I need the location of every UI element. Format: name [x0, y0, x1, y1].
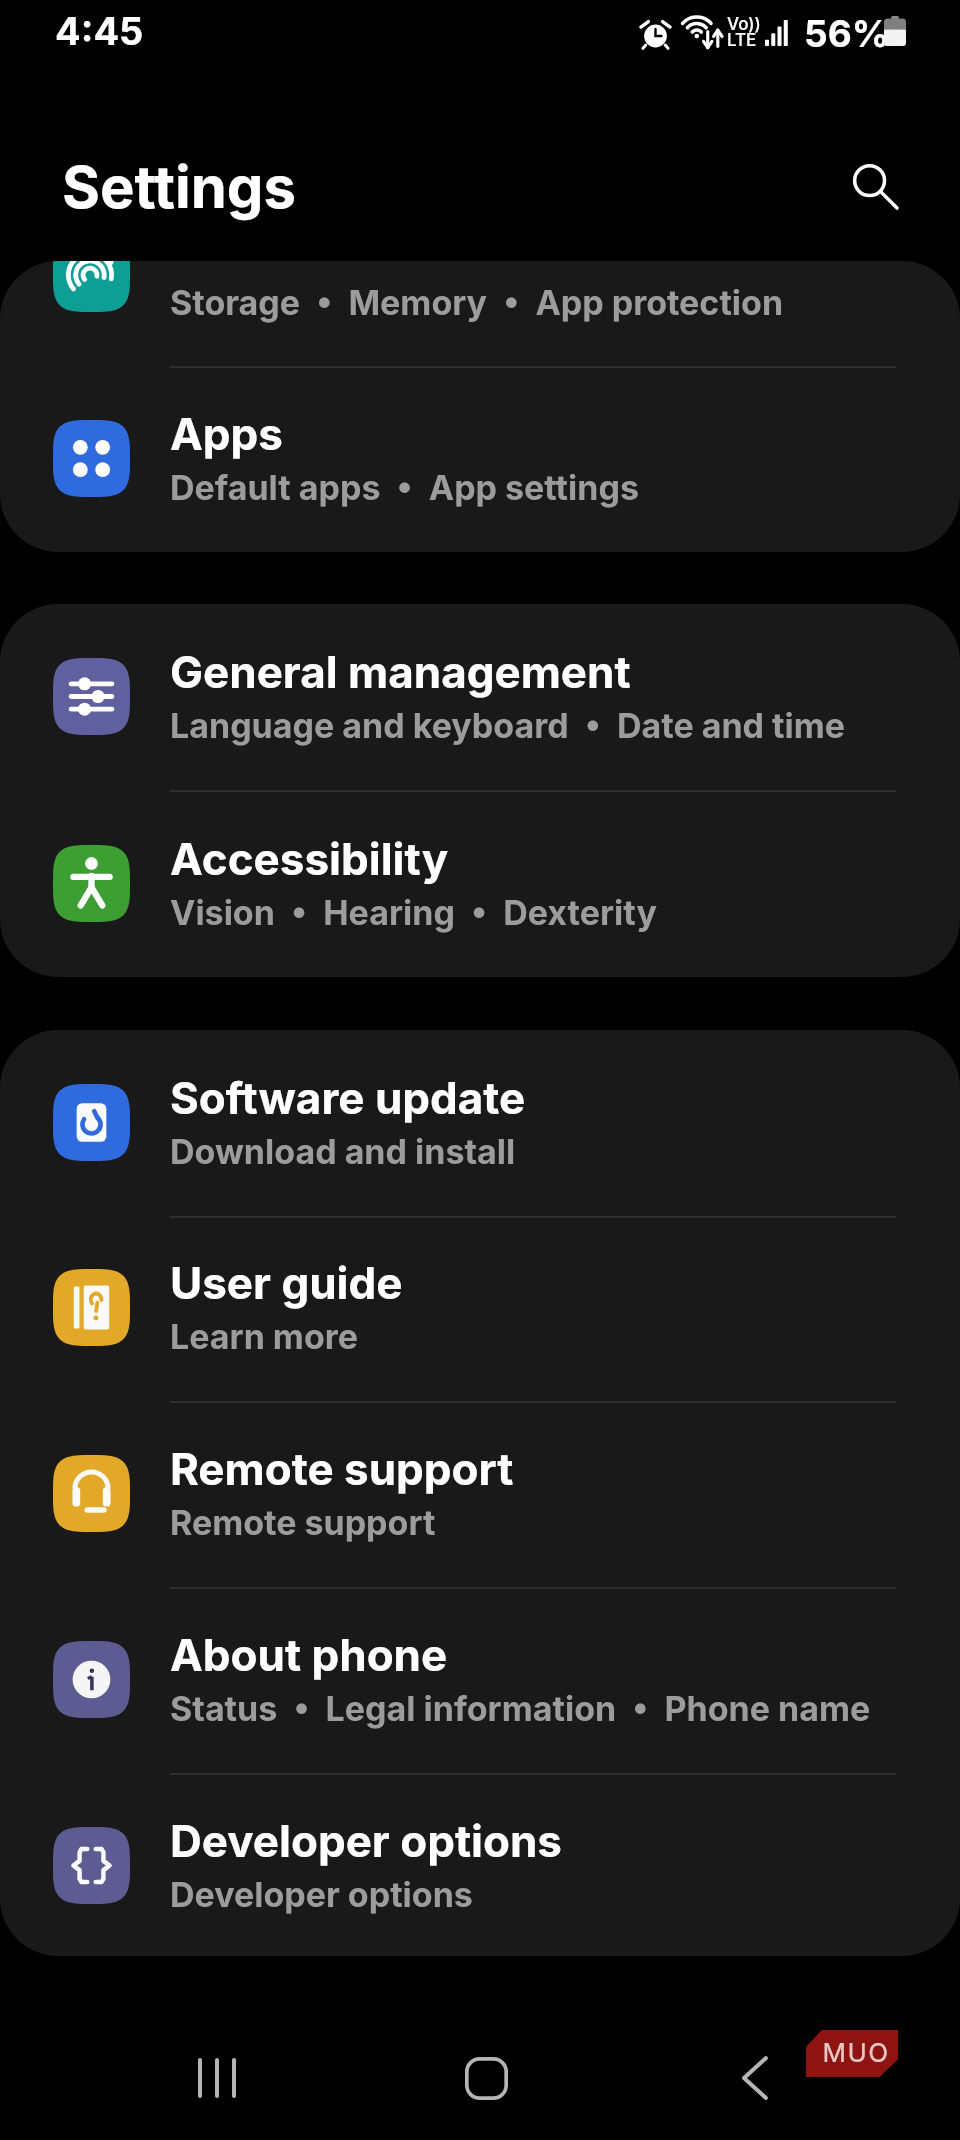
- staticText: User guide: [170, 1256, 403, 1309]
- staticText: Language and keyboard • Date and time: [170, 705, 846, 746]
- staticText: LTE: [727, 30, 757, 51]
- button[interactable]: Accessibility: [0, 791, 960, 976]
- staticText: 56%: [804, 11, 890, 56]
- staticText: Apps: [170, 407, 283, 460]
- button[interactable]: User guide: [0, 1215, 960, 1400]
- button[interactable]: Search: [818, 129, 930, 241]
- button[interactable]: Software update: [0, 1030, 960, 1215]
- staticText: Accessibility: [170, 832, 449, 885]
- button[interactable]: Back: [699, 2022, 811, 2134]
- button[interactable]: Apps: [0, 366, 960, 551]
- button[interactable]: Recent apps: [161, 2022, 273, 2134]
- staticText: Developer options: [170, 1814, 562, 1867]
- staticText: Developer options: [170, 1874, 473, 1915]
- staticText: General management: [170, 645, 631, 698]
- button[interactable]: Home: [430, 2022, 542, 2134]
- button[interactable]: Remote support: [0, 1401, 960, 1586]
- staticText: 4:45: [55, 8, 144, 54]
- staticText: Learn more: [170, 1316, 359, 1357]
- button[interactable]: Developer options: [0, 1773, 960, 1956]
- staticText: Settings: [62, 152, 296, 222]
- staticText: Download and install: [170, 1131, 516, 1172]
- button[interactable]: Security and privacy: [0, 261, 960, 366]
- button[interactable]: General management: [0, 604, 960, 789]
- staticText: Remote support: [170, 1442, 514, 1495]
- staticText: Vision • Hearing • Dexterity: [170, 892, 657, 933]
- staticText: Default apps • App settings: [170, 467, 639, 508]
- button[interactable]: About phone: [0, 1587, 960, 1772]
- staticText: Storage • Memory • App protection: [170, 282, 784, 323]
- staticText: Remote support: [170, 1502, 436, 1543]
- staticText: About phone: [170, 1628, 448, 1681]
- staticText: Software update: [170, 1071, 526, 1124]
- staticText: MUO: [822, 2037, 890, 2068]
- staticText: Status • Legal information • Phone name: [170, 1688, 871, 1729]
- staticText: Vo)): [727, 14, 761, 35]
